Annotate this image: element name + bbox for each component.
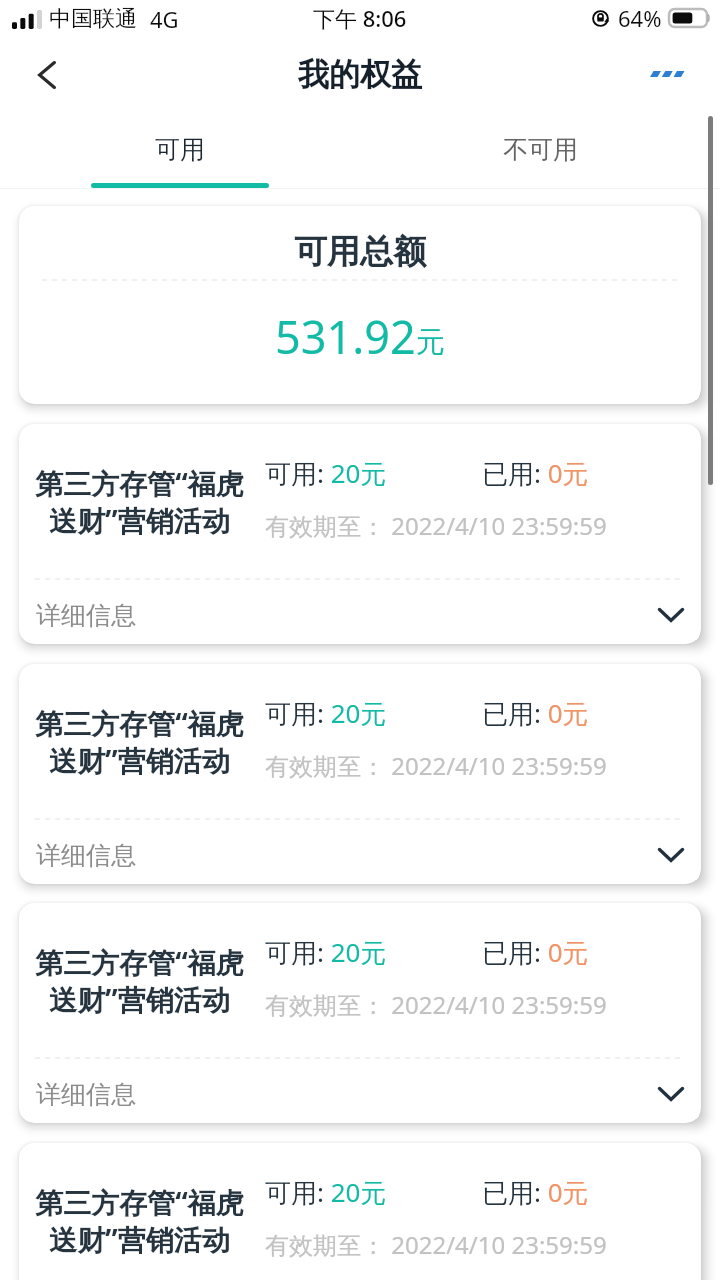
staticText: 531.92	[275, 306, 416, 367]
button[interactable]: 可用	[0, 113, 360, 189]
button[interactable]: 详细信息	[19, 586, 701, 644]
staticText: 有效期至： 2022/4/10 23:59:59	[265, 988, 607, 1021]
staticText: 不可用	[503, 134, 578, 165]
staticText: 有效期至： 2022/4/10 23:59:59	[265, 1228, 607, 1261]
staticText: 已用: 0元	[482, 1174, 589, 1210]
staticText: 元	[416, 324, 445, 361]
button[interactable]: 不可用	[360, 113, 720, 189]
staticText: 可用: 20元	[265, 934, 387, 970]
staticText: 4G	[150, 4, 179, 34]
staticText: 64%	[618, 3, 662, 33]
button[interactable]: 详细信息	[19, 826, 701, 884]
staticText: 有效期至： 2022/4/10 23:59:59	[265, 509, 607, 542]
staticText: 可用	[155, 134, 205, 165]
staticText: 可用: 20元	[265, 695, 387, 731]
staticText: 中国联通	[49, 5, 137, 33]
staticText: 详细信息	[36, 600, 136, 631]
staticText: 已用: 0元	[482, 455, 589, 491]
staticText: 第三方存管“福虎 送财”营销活动	[35, 704, 244, 780]
staticText: 第三方存管“福虎 送财”营销活动	[35, 464, 244, 540]
staticText: 已用: 0元	[482, 695, 589, 731]
staticText: 已用: 0元	[482, 934, 589, 970]
staticText: 详细信息	[36, 1079, 136, 1110]
button[interactable]: 可用总额	[19, 206, 701, 404]
staticText: 第三方存管“福虎 送财”营销活动	[35, 943, 244, 1019]
staticText: 可用: 20元	[265, 455, 387, 491]
staticText: 可用总额	[294, 231, 426, 273]
button[interactable]: More options	[640, 44, 720, 113]
staticText: 详细信息	[36, 840, 136, 871]
staticText: 可用: 20元	[265, 1174, 387, 1210]
staticText: 有效期至： 2022/4/10 23:59:59	[265, 749, 607, 782]
staticText: 下午 8:06	[313, 3, 407, 33]
button[interactable]: 详细信息	[19, 1065, 701, 1123]
button[interactable]: Back	[0, 44, 76, 113]
staticText: 我的权益	[298, 55, 422, 94]
staticText: 第三方存管“福虎 送财”营销活动	[35, 1183, 244, 1259]
